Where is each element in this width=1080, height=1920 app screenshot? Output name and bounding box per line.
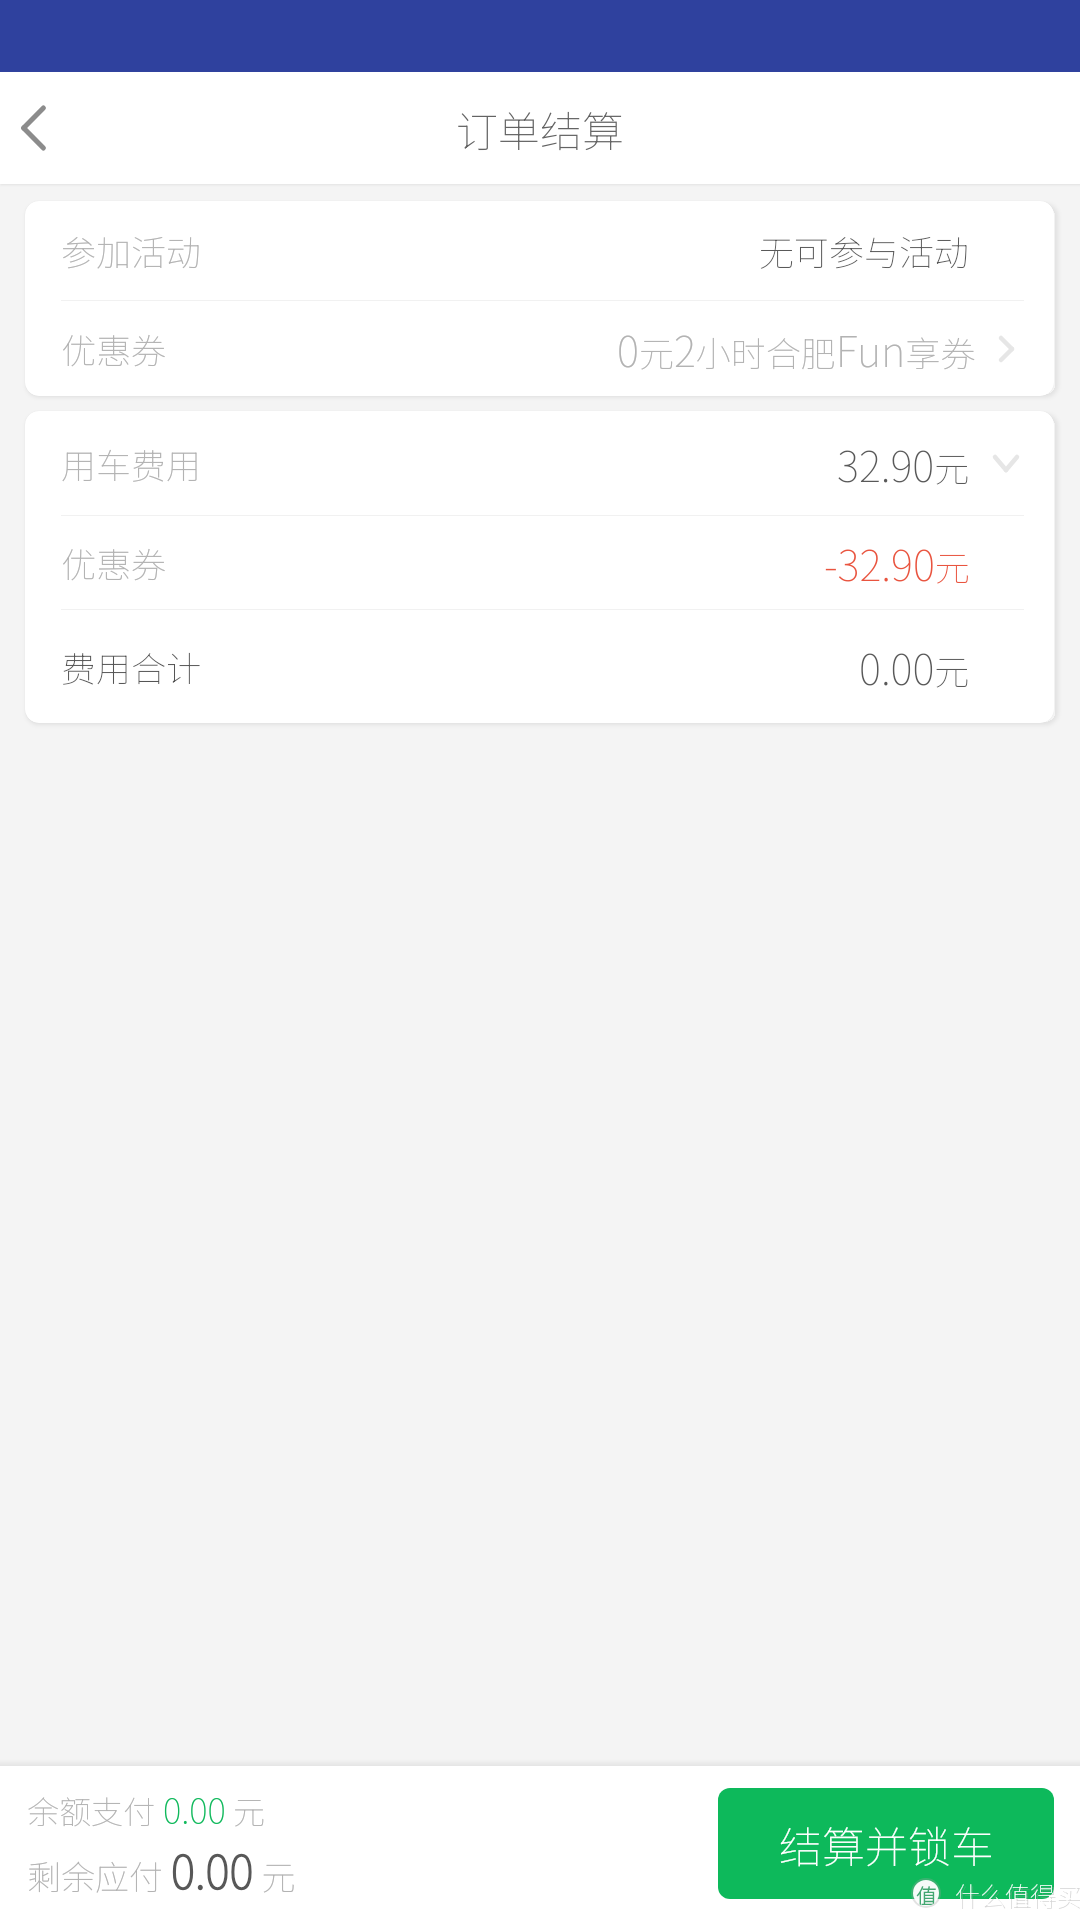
button[interactable]: 参加活动: [25, 201, 1054, 300]
staticText: 剩余应付: [27, 1851, 171, 1900]
staticText: 0.00元: [859, 636, 970, 697]
staticText: 32.90元: [837, 433, 970, 494]
staticText: -32.90元: [824, 532, 970, 593]
staticText: 0.00: [171, 1836, 254, 1903]
staticText: 优惠券: [61, 323, 167, 374]
staticText: 用车费用: [61, 438, 202, 489]
staticText: 无可参与活动: [759, 225, 970, 276]
staticText: 订单结算: [456, 98, 625, 159]
staticText: 元: [226, 1787, 266, 1833]
button[interactable]: Back: [0, 72, 90, 184]
staticText: 什么值得买: [955, 1876, 1080, 1912]
staticText: 0元2小时合肥Fun享券: [617, 318, 976, 379]
button[interactable]: 优惠券: [25, 301, 1054, 396]
staticText: 什么值得买: [957, 1878, 1080, 1914]
button[interactable]: 费用合计: [25, 610, 1054, 723]
staticText: 费用合计: [61, 641, 202, 692]
staticText: 值: [916, 1880, 937, 1906]
staticText: 优惠券: [61, 537, 167, 588]
staticText: 0.00: [163, 1783, 226, 1834]
staticText: 参加活动: [61, 225, 202, 276]
button[interactable]: 结算并锁车: [718, 1788, 1054, 1899]
button[interactable]: 用车费用: [25, 411, 1054, 515]
button[interactable]: 优惠券: [25, 516, 1054, 609]
staticText: 元: [254, 1851, 296, 1900]
staticText: 结算并锁车: [779, 1813, 994, 1875]
staticText: 余额支付: [27, 1787, 163, 1833]
